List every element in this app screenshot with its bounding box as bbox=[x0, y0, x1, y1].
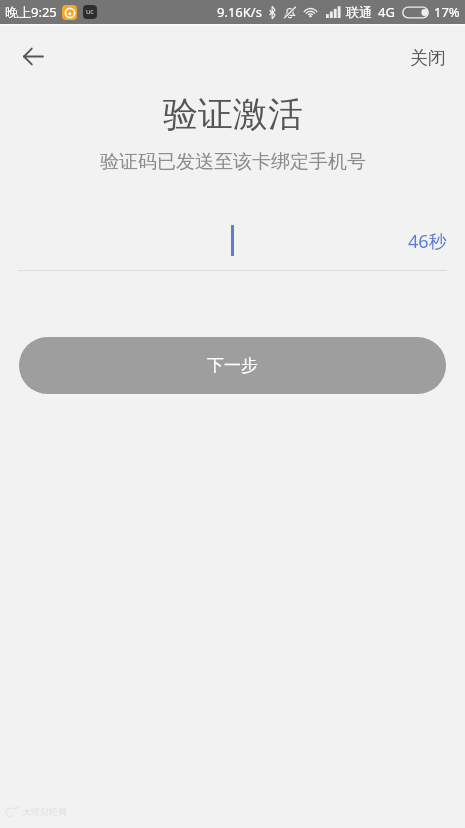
staticText: 大理财经网 bbox=[22, 806, 67, 817]
staticText: 9.16K/s bbox=[217, 3, 262, 21]
staticText: 验证码已发送至该卡绑定手机号 bbox=[100, 150, 366, 174]
button[interactable]: 下一步 bbox=[19, 337, 446, 394]
button[interactable]: Back bbox=[9, 32, 57, 80]
staticText: 46秒 bbox=[408, 229, 447, 251]
staticText: 4G bbox=[378, 3, 395, 21]
staticText: uc bbox=[86, 7, 94, 17]
staticText: 联通 bbox=[346, 4, 372, 20]
button[interactable]: 验证码输入框 bbox=[18, 217, 361, 263]
staticText: 下一步 bbox=[207, 355, 258, 376]
button[interactable]: 关闭 bbox=[390, 33, 465, 84]
staticText: 关闭 bbox=[410, 47, 446, 70]
staticText: 晚上9:25 bbox=[5, 3, 57, 21]
button[interactable]: 46秒 bbox=[402, 217, 453, 263]
staticText: 验证激活 bbox=[163, 92, 303, 136]
staticText: 17% bbox=[434, 3, 460, 21]
